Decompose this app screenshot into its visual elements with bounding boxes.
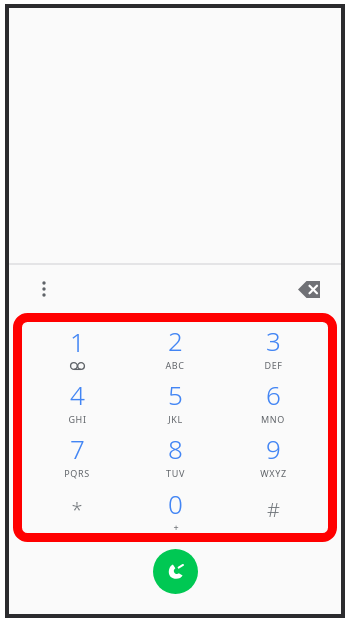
button[interactable]: 8 xyxy=(126,428,224,482)
button[interactable]: * xyxy=(28,482,126,536)
staticText: 9 xyxy=(266,431,281,466)
button[interactable]: 7 xyxy=(28,428,126,482)
staticText: 8 xyxy=(168,431,183,466)
button[interactable]: 6 xyxy=(224,374,322,428)
staticText: 3 xyxy=(266,323,281,358)
staticText: 7 xyxy=(70,431,85,466)
staticText: + xyxy=(173,521,179,533)
button[interactable]: 2 xyxy=(126,320,224,374)
staticText: 1 xyxy=(70,324,85,359)
staticText: DEF xyxy=(264,359,283,371)
button[interactable]: More options xyxy=(27,272,61,306)
button[interactable]: Backspace xyxy=(291,271,327,307)
staticText: 0 xyxy=(168,486,183,521)
button[interactable]: 0 xyxy=(126,482,224,536)
button[interactable]: 4 xyxy=(28,374,126,428)
staticText: 6 xyxy=(266,377,281,412)
button[interactable]: # xyxy=(224,482,322,536)
staticText: PQRS xyxy=(64,467,90,479)
staticText: JKL xyxy=(168,413,183,425)
staticText: MNO xyxy=(261,413,285,425)
button[interactable]: 1 xyxy=(28,320,126,374)
staticText: GHI xyxy=(68,413,87,425)
staticText: 4 xyxy=(70,377,85,412)
staticText: 5 xyxy=(168,377,183,412)
button[interactable]: 9 xyxy=(224,428,322,482)
staticText: ABC xyxy=(165,359,185,371)
button[interactable]: 5 xyxy=(126,374,224,428)
button[interactable]: Call xyxy=(153,549,198,594)
staticText: # xyxy=(267,496,280,523)
button[interactable]: 3 xyxy=(224,320,322,374)
staticText: 2 xyxy=(168,323,183,358)
staticText: * xyxy=(71,496,83,523)
staticText: TUV xyxy=(166,467,185,479)
staticText: WXYZ xyxy=(260,467,287,479)
